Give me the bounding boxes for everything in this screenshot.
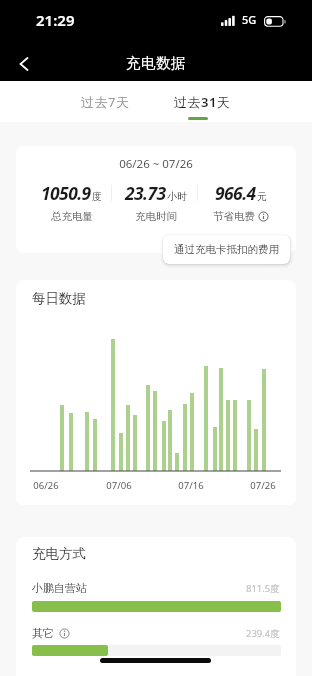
staticText: 节省电费 [213, 210, 255, 223]
staticText: 5G [242, 12, 257, 27]
staticText: 小时 [167, 190, 187, 203]
staticText: 小鹏自营站 [32, 581, 87, 595]
button[interactable]: 充电时间 [135, 210, 177, 223]
button[interactable]: 过去31天 [166, 93, 239, 111]
staticText: 07/16 [175, 479, 207, 492]
button[interactable]: 节省电费 [213, 210, 269, 223]
staticText: 过去7天 [81, 93, 130, 111]
staticText: 239.4度 [246, 627, 280, 640]
staticText: 其它 [32, 626, 54, 640]
staticText: 966.4 [215, 181, 256, 205]
staticText: 1050.9 [41, 181, 91, 205]
staticText: 充电时间 [135, 210, 177, 223]
staticText: 元 [257, 190, 267, 203]
staticText: 充电方式 [32, 545, 86, 562]
button[interactable]: 总充电量 [51, 210, 93, 223]
button[interactable]: 通过充电卡抵扣的费用 [163, 235, 290, 264]
staticText: 06/26 [30, 479, 62, 492]
staticText: 07/26 [247, 479, 279, 492]
button[interactable]: 小鹏自营站 [32, 581, 280, 595]
staticText: 06/26 ~ 07/26 [16, 156, 296, 172]
staticText: 充电数据 [0, 54, 312, 72]
button[interactable]: 其它 [32, 626, 280, 640]
staticText: 总充电量 [51, 210, 93, 223]
button[interactable]: 过去7天 [73, 93, 138, 111]
staticText: 通过充电卡抵扣的费用 [174, 243, 279, 256]
staticText: 过去31天 [174, 93, 231, 111]
staticText: 23.73 [125, 181, 166, 205]
staticText: 度 [92, 190, 102, 203]
staticText: 21:29 [36, 10, 75, 30]
staticText: 811.5度 [246, 582, 280, 595]
staticText: 每日数据 [32, 290, 86, 307]
staticText: 07/06 [103, 479, 135, 492]
button[interactable] [8, 48, 40, 80]
